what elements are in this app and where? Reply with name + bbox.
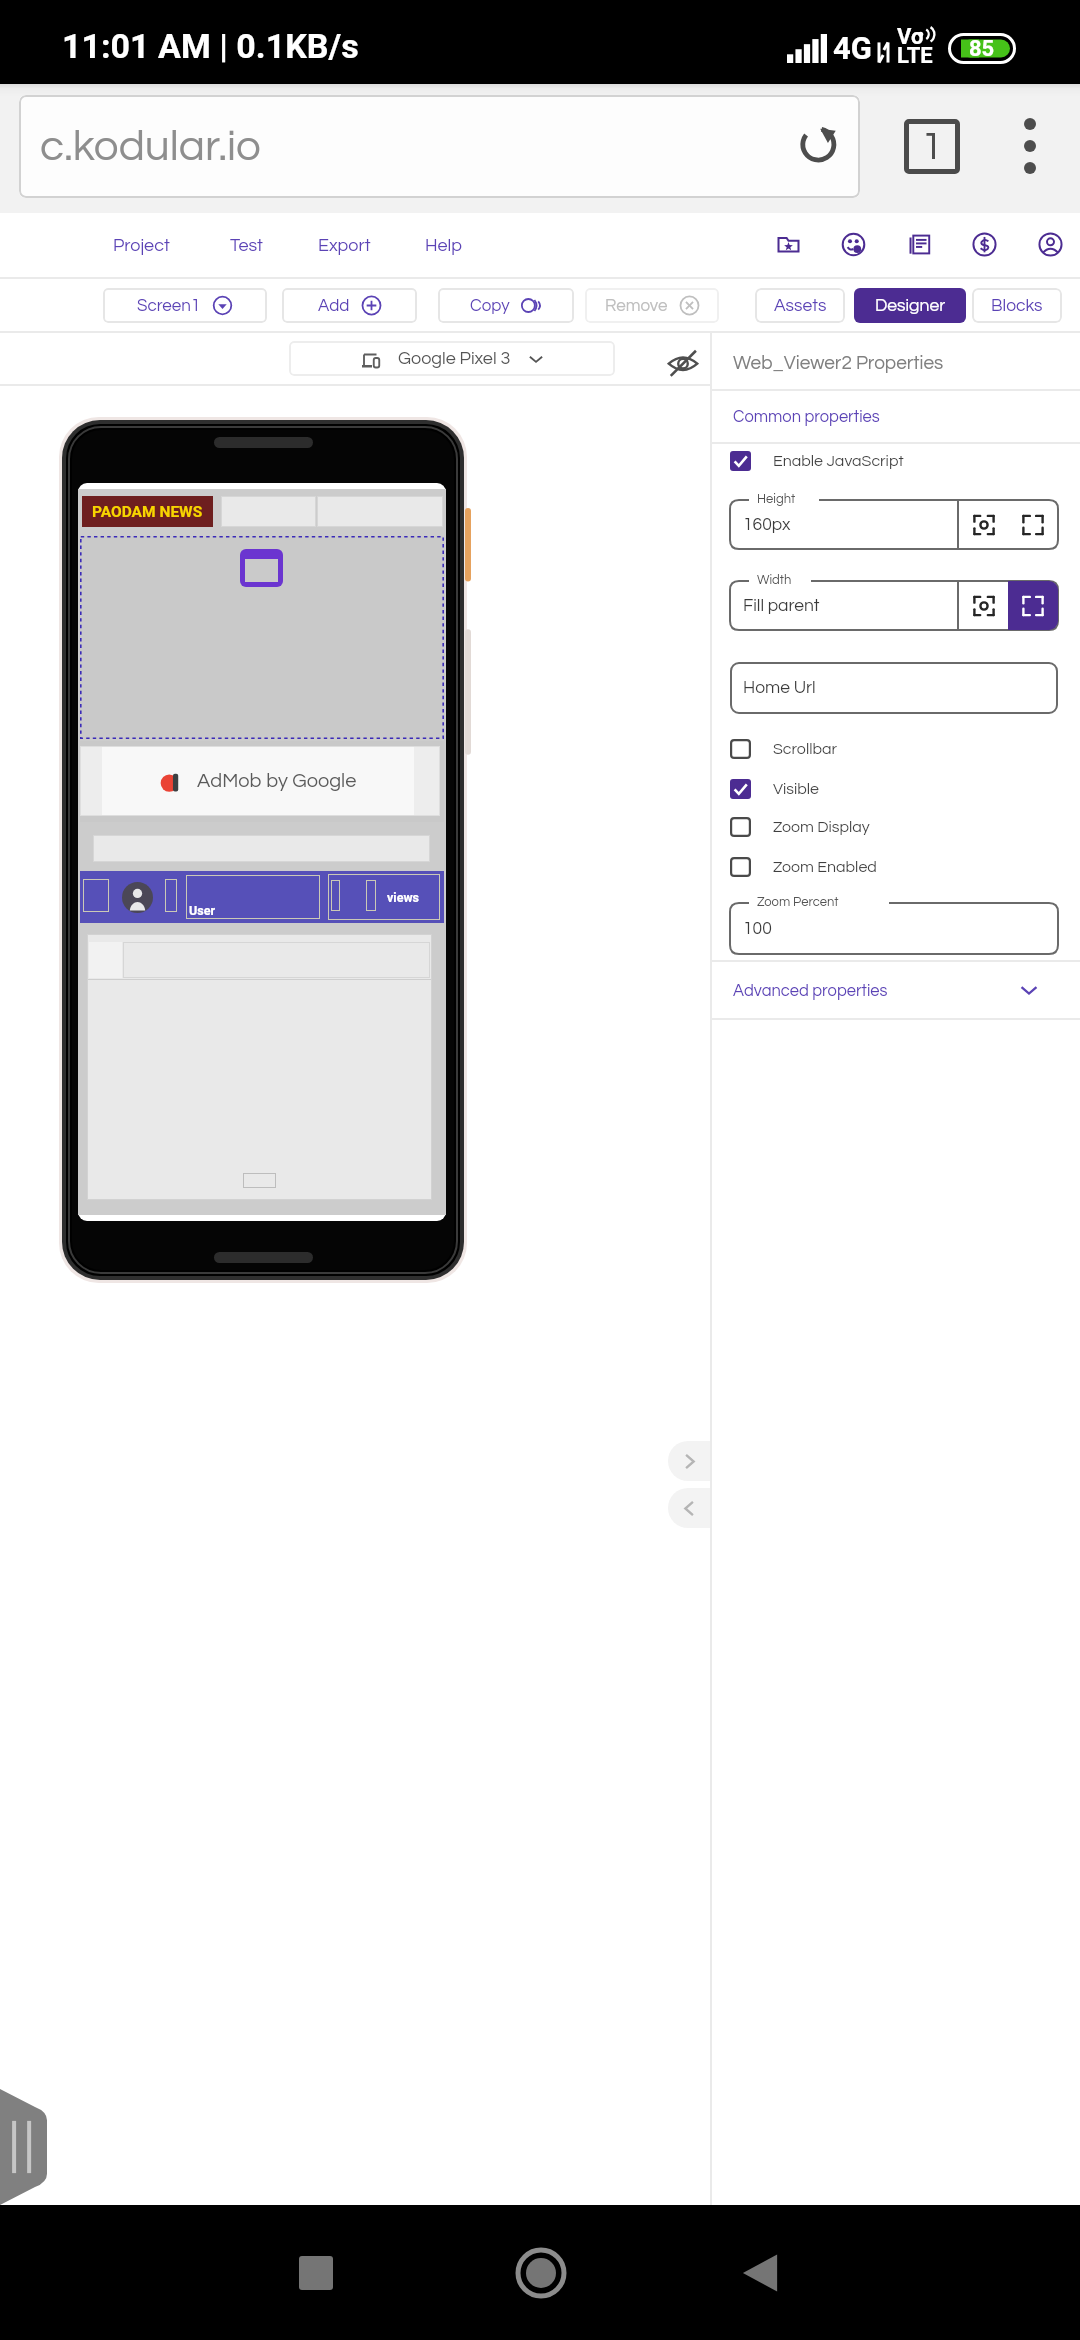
staticText: Height [757, 492, 796, 505]
button[interactable]: Documentation [897, 222, 941, 266]
button[interactable]: Blocks [972, 288, 1062, 323]
staticText: Zoom Enabled [773, 859, 877, 875]
button[interactable]: Project [105, 213, 178, 277]
staticText: 160px [743, 516, 791, 534]
staticText: 85 [969, 36, 995, 62]
button[interactable]: Screen1 [103, 288, 267, 323]
button[interactable]: Back [700, 2213, 820, 2333]
button[interactable]: Assets [755, 288, 845, 323]
button[interactable]: Recent apps [256, 2213, 376, 2333]
staticText: PAODAM NEWS [92, 503, 203, 521]
staticText: Zoom Percent [757, 895, 839, 908]
staticText: Google Pixel 3 [398, 349, 511, 368]
button[interactable]: Community [831, 222, 875, 266]
button[interactable]: Google Pixel 3 [289, 341, 615, 376]
button[interactable]: Show previous panel [668, 1488, 710, 1528]
staticText: Web_Viewer2 Properties [733, 353, 944, 373]
button[interactable]: More options [998, 98, 1062, 198]
button[interactable]: Automatic size [959, 500, 1008, 549]
button[interactable]: Copy [438, 288, 574, 323]
staticText: Assets [774, 297, 827, 315]
button[interactable]: Export [310, 213, 379, 277]
staticText: Advanced properties [733, 982, 888, 999]
staticText: Help [425, 236, 462, 255]
staticText: Project [113, 236, 170, 255]
button[interactable]: Enable JavaScript [712, 442, 1080, 479]
staticText: Visible [773, 781, 820, 797]
button[interactable]: Home Url [730, 662, 1058, 714]
button[interactable]: Reload page [788, 110, 852, 174]
staticText: Vo [897, 24, 924, 50]
staticText: User [189, 903, 215, 918]
staticText: 4G [833, 30, 872, 66]
button[interactable]: Zoom Enabled [712, 848, 1080, 885]
staticText: 11:01 AM | 0.1KB/s [62, 26, 359, 66]
button[interactable]: Toggle hidden components [661, 341, 705, 385]
staticText: 100 [743, 920, 772, 938]
staticText: views [387, 890, 420, 905]
staticText: Common properties [733, 408, 880, 425]
staticText: Copy [470, 297, 510, 315]
button[interactable]: Home [481, 2213, 601, 2333]
button[interactable]: Add [282, 288, 417, 323]
button[interactable]: Remove [585, 288, 719, 323]
button[interactable]: Help [417, 213, 470, 277]
button[interactable]: Show next panel [668, 1441, 710, 1481]
staticText: Home Url [743, 679, 816, 697]
staticText: Export [318, 236, 371, 255]
button[interactable]: Visible [712, 770, 1080, 807]
button[interactable]: Monetization [962, 222, 1006, 266]
staticText: Screen1 [137, 297, 201, 315]
staticText: Test [230, 236, 263, 255]
button[interactable]: Common properties [712, 391, 1080, 442]
staticText: Scrollbar [773, 741, 838, 757]
button[interactable]: Drag handle [0, 2089, 47, 2205]
staticText: Blocks [991, 297, 1043, 315]
staticText: 1 [921, 126, 943, 167]
staticText: Zoom Display [773, 819, 870, 835]
staticText: c.kodular.io [40, 124, 261, 169]
staticText: Remove [605, 297, 668, 315]
button[interactable]: Account [1028, 222, 1072, 266]
button[interactable]: Fill parent [1008, 500, 1058, 549]
button[interactable]: Automatic size [959, 581, 1008, 630]
staticText: Enable JavaScript [773, 453, 904, 469]
button[interactable]: Zoom Display [712, 808, 1080, 845]
button[interactable]: Scrollbar [712, 730, 1080, 767]
staticText: Width [757, 573, 792, 586]
button[interactable]: Open tabs [904, 119, 960, 174]
staticText: Fill parent [743, 597, 820, 615]
button[interactable]: Advanced properties [712, 962, 1080, 1018]
button[interactable]: c.kodular.io [19, 95, 860, 198]
button[interactable]: Fill parent [1008, 581, 1058, 630]
staticText: LTE [897, 43, 933, 69]
button[interactable]: Test [222, 213, 271, 277]
staticText: Designer [875, 297, 946, 315]
button[interactable]: Designer [854, 288, 966, 323]
button[interactable]: Gallery [766, 222, 810, 266]
staticText: Add [318, 297, 350, 315]
staticText: AdMob by Google [197, 771, 357, 792]
